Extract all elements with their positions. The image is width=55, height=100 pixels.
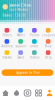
staticText: History [30, 56, 39, 59]
button[interactable]: Camera [22, 89, 33, 97]
button[interactable]: Help [41, 50, 55, 59]
staticText: Upgrade to Plus [15, 71, 39, 74]
button[interactable]: Orders [0, 28, 14, 37]
button[interactable]: History [27, 50, 41, 59]
staticText: Invite [30, 44, 38, 48]
button[interactable]: Trending [11, 89, 22, 97]
staticText: Help [45, 56, 52, 59]
button[interactable]: Saved [14, 50, 28, 59]
staticText: Points [30, 33, 39, 37]
button[interactable]: Upgrade to Plus [2, 69, 53, 76]
button[interactable]: Points [27, 28, 41, 37]
staticText: Saved [17, 56, 24, 59]
button[interactable]: Reviews [0, 50, 14, 59]
staticText: Shop [45, 44, 52, 48]
button[interactable]: Home [0, 89, 11, 97]
button[interactable]: Address [0, 39, 14, 48]
button[interactable]: Categories [33, 89, 44, 97]
staticText: Gold Member [9, 8, 28, 11]
button[interactable]: Invite [27, 39, 41, 48]
staticText: Coupons [42, 33, 55, 37]
staticText: Wallet [17, 33, 25, 37]
staticText: Balance 128.50 [2, 14, 25, 17]
button[interactable]: Support [14, 39, 28, 48]
staticText: Address [1, 44, 12, 48]
button[interactable]: Profile [44, 89, 55, 97]
staticText: Orders [2, 33, 11, 37]
staticText: Jamie Chen [9, 2, 31, 7]
button[interactable]: Coupons [41, 28, 55, 37]
button[interactable]: Wallet [14, 28, 28, 37]
staticText: Support [15, 44, 26, 48]
staticText: Reviews [2, 56, 11, 59]
button[interactable]: Shop [41, 39, 55, 48]
